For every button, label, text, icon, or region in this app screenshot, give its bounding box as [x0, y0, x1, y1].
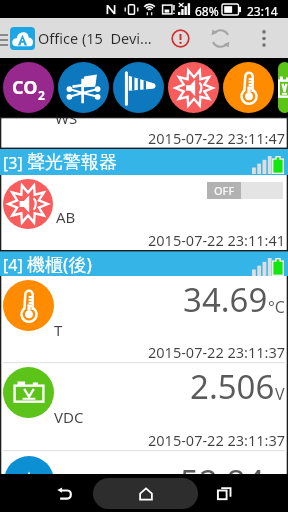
button[interactable]: [3]: [0, 149, 288, 175]
button[interactable]: Voltage: [278, 62, 288, 113]
staticText: 2015-07-22 23:11:37: [148, 430, 285, 450]
staticText: AB: [56, 207, 76, 227]
button[interactable]: Back: [50, 479, 78, 507]
button[interactable]: Wind speed: [58, 62, 109, 113]
button[interactable]: VDC: [0, 363, 288, 451]
staticText: Office (15 Devi...: [38, 28, 152, 48]
staticText: 2015-07-22 23:11:37: [148, 342, 285, 362]
staticText: 34.69: [183, 277, 268, 322]
button[interactable]: Refresh: [206, 24, 235, 53]
staticText: V: [275, 383, 285, 405]
staticText: 2015-07-22 23:11:41: [148, 230, 285, 250]
button[interactable]: Open navigation drawer: [0, 26, 14, 50]
button[interactable]: 52.84: [0, 451, 288, 511]
staticText: °C: [268, 296, 285, 318]
staticText: 聲光警報器: [27, 151, 117, 174]
button[interactable]: [4]: [0, 251, 288, 277]
button[interactable]: Recent apps: [210, 479, 238, 507]
staticText: 2: [38, 87, 45, 103]
button[interactable]: Alarm: [168, 62, 219, 113]
button[interactable]: Temperature: [223, 62, 274, 113]
staticText: CO: [12, 75, 38, 100]
staticText: 52.84: [180, 459, 265, 504]
staticText: T: [54, 320, 63, 340]
button[interactable]: More options: [251, 23, 277, 53]
button[interactable]: AB: [0, 175, 288, 251]
button[interactable]: Alerts: [166, 24, 195, 53]
button[interactable]: Carbon dioxide: [3, 62, 54, 113]
button[interactable]: Home: [93, 478, 198, 509]
button[interactable]: Application: [10, 27, 35, 50]
button[interactable]: Wind direction: [113, 62, 164, 113]
staticText: VDC: [54, 407, 84, 427]
staticText: 68%: [195, 3, 219, 19]
staticText: 23:14: [247, 3, 278, 19]
staticText: OFF: [214, 183, 235, 198]
button[interactable]: T: [0, 276, 288, 363]
button[interactable]: Alarm switch, off: [207, 182, 283, 199]
staticText: WS: [55, 108, 78, 128]
staticText: 2.506: [190, 364, 275, 409]
staticText: 2015-07-22 23:11:47: [148, 128, 285, 148]
staticText: [3]: [3, 152, 27, 174]
staticText: [4]: [3, 254, 27, 276]
staticText: 機櫃(後): [27, 252, 92, 277]
button[interactable]: WS: [0, 58, 288, 149]
